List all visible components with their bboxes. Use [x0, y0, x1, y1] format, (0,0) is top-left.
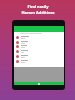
button[interactable] — [14, 54, 64, 59]
staticText: Find easily — [27, 4, 49, 9]
button[interactable] — [14, 40, 64, 45]
button[interactable] — [14, 44, 64, 49]
button[interactable] — [14, 59, 64, 64]
button[interactable]: Scan barcode — [14, 82, 64, 85]
button[interactable] — [14, 49, 64, 54]
staticText: Haram Additives — [21, 10, 55, 15]
button[interactable] — [14, 35, 64, 40]
